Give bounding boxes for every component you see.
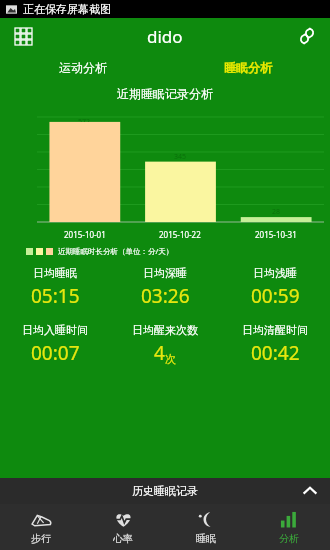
staticText: 日均睡眠: [33, 266, 77, 280]
staticText: 心率: [113, 532, 133, 545]
staticText: 05:15: [31, 283, 80, 309]
staticText: 4: [154, 340, 165, 366]
staticText: 分析: [279, 532, 299, 545]
staticText: 28: [272, 207, 281, 217]
button[interactable]: 分析: [247, 504, 330, 550]
staticText: 日均入睡时间: [22, 323, 88, 337]
button[interactable]: 运动分析: [0, 54, 165, 80]
staticText: 日均醒来次数: [132, 323, 198, 337]
staticText: 睡眠分析: [224, 60, 272, 75]
staticText: 睡眠: [196, 532, 216, 545]
staticText: 运动分析: [59, 60, 107, 75]
staticText: 03:26: [141, 283, 190, 309]
button[interactable]: Link: [292, 21, 322, 51]
button[interactable]: 睡眠: [164, 504, 247, 550]
staticText: 正在保存屏幕截图: [23, 2, 111, 16]
button[interactable]: Menu: [8, 21, 38, 51]
staticText: 345: [174, 152, 187, 162]
staticText: 00:07: [31, 340, 80, 366]
button[interactable]: 步行: [0, 504, 82, 550]
staticText: 00:59: [251, 283, 300, 309]
staticText: 2015-10-01: [64, 229, 106, 240]
staticText: 日均浅睡: [253, 266, 297, 280]
staticText: 2015-10-22: [159, 229, 201, 240]
staticText: 00:42: [251, 340, 300, 366]
staticText: 日均深睡: [143, 266, 187, 280]
button[interactable]: 心率: [82, 504, 164, 550]
staticText: 历史睡眠记录: [132, 484, 198, 498]
staticText: 572: [78, 117, 91, 122]
staticText: 日均清醒时间: [242, 323, 308, 337]
staticText: 近期睡眠记录分析: [117, 86, 213, 101]
staticText: dido: [147, 25, 183, 48]
staticText: 2015-10-31: [255, 229, 297, 240]
staticText: 次: [165, 352, 176, 366]
staticText: 近期睡眠时长分析（单位：分/天）: [58, 246, 174, 256]
staticText: 步行: [31, 532, 51, 545]
button[interactable]: 睡眠分析: [165, 54, 330, 80]
button[interactable]: 历史睡眠记录: [0, 478, 330, 504]
